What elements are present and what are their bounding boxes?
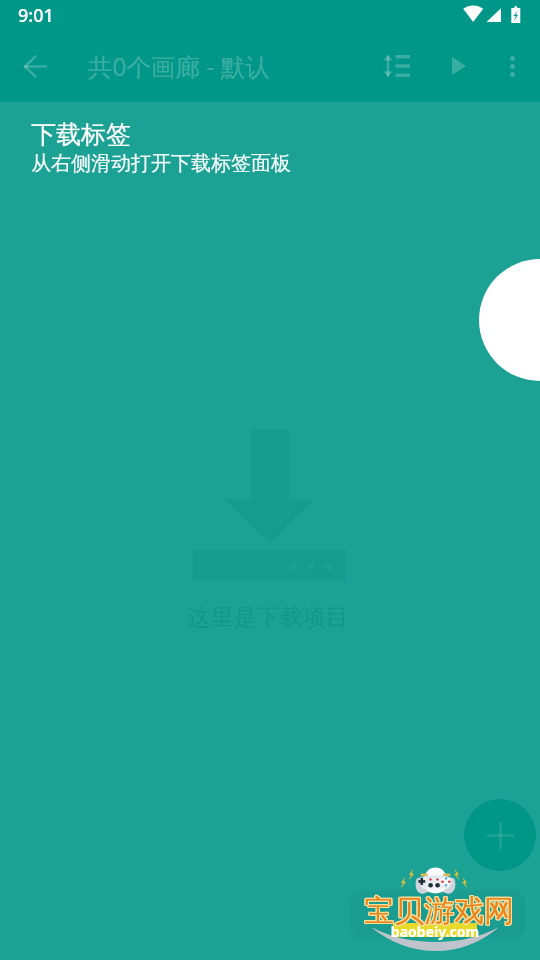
staticText: 从右侧滑动打开下载标签面板	[31, 151, 291, 176]
staticText: baobeiy.com	[388, 922, 482, 941]
staticText: 宝贝游戏网	[365, 891, 515, 929]
staticText: 下载标签	[31, 119, 131, 150]
staticText: 宝贝游戏网	[363, 891, 513, 929]
button[interactable]: Add	[464, 799, 536, 871]
staticText: 宝贝游戏网	[363, 893, 513, 931]
button[interactable]: Sort	[372, 42, 420, 90]
button[interactable]: More options	[488, 42, 536, 90]
staticText: 宝贝游戏网	[365, 892, 515, 930]
staticText: 宝贝游戏网	[365, 893, 515, 931]
staticText: 9:01	[18, 3, 54, 28]
staticText: 共0个画廊 - 默认	[88, 50, 270, 83]
button[interactable]: 下载标签	[0, 102, 540, 176]
staticText: 宝贝游戏网	[363, 892, 513, 930]
staticText: 宝贝游戏网	[364, 893, 514, 931]
staticText: 宝贝游戏网	[364, 892, 514, 930]
staticText: 宝贝游戏网	[364, 891, 514, 929]
button[interactable]: Back	[12, 42, 60, 90]
button[interactable]: Play	[435, 42, 483, 90]
